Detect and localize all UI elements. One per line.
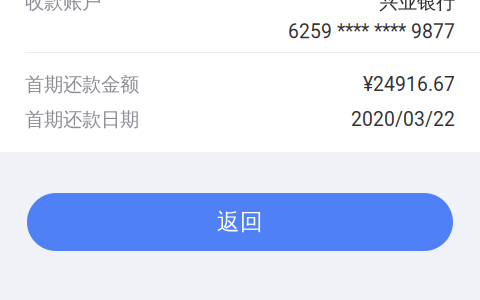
staticText: 6259 **** **** 9877 — [288, 20, 455, 43]
staticText: 首期还款金额 — [25, 72, 139, 97]
staticText: ¥24916.67 — [363, 73, 455, 96]
staticText: 兴业银行 — [379, 0, 455, 14]
button[interactable]: 返回 — [27, 193, 453, 251]
staticText: 返回 — [217, 208, 263, 236]
staticText: 收款账户 — [25, 0, 101, 14]
staticText: 2020/03/22 — [351, 108, 455, 131]
staticText: 首期还款日期 — [25, 107, 139, 132]
